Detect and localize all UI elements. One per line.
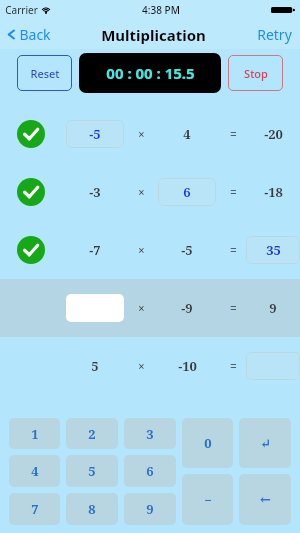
staticText: 9 bbox=[269, 299, 277, 317]
staticText: = bbox=[230, 358, 237, 374]
button[interactable]: Stop bbox=[228, 55, 283, 91]
button[interactable]: 35 bbox=[246, 236, 300, 264]
staticText: = bbox=[230, 184, 237, 200]
staticText: 00 : 00 : 15.5 bbox=[106, 63, 195, 83]
button[interactable]: -7 bbox=[0, 221, 300, 279]
button[interactable] bbox=[246, 352, 300, 380]
button[interactable]: Reset bbox=[17, 55, 72, 91]
staticText: -3 bbox=[89, 183, 101, 201]
staticText: 1 bbox=[31, 425, 39, 443]
button[interactable]: 5 bbox=[66, 455, 118, 487]
staticText: -5 bbox=[181, 241, 193, 259]
staticText: 6 bbox=[146, 462, 154, 480]
button[interactable]: 0 bbox=[182, 418, 233, 468]
staticText: × bbox=[138, 358, 145, 374]
button[interactable]: Retry bbox=[257, 20, 292, 49]
staticText: 35 bbox=[266, 241, 281, 259]
staticText: -5 bbox=[89, 125, 101, 143]
staticText: = bbox=[230, 242, 237, 258]
staticText: ← bbox=[260, 492, 271, 507]
staticText: 3 bbox=[146, 425, 154, 443]
staticText: Stop bbox=[244, 66, 268, 81]
staticText: -9 bbox=[181, 299, 193, 317]
staticText: -7 bbox=[89, 241, 101, 259]
staticText: 8 bbox=[88, 500, 96, 518]
button[interactable]: 7 bbox=[9, 493, 60, 525]
button[interactable]: 4 bbox=[9, 455, 60, 487]
button[interactable]: 3 bbox=[124, 418, 176, 449]
button[interactable]: 8 bbox=[66, 493, 118, 525]
staticText: Retry bbox=[257, 25, 292, 44]
staticText: 6 bbox=[183, 183, 191, 201]
staticText: × bbox=[138, 242, 145, 258]
staticText: 4 bbox=[31, 462, 39, 480]
button[interactable]: Back bbox=[6, 20, 51, 49]
staticText: = bbox=[230, 300, 237, 316]
staticText: × bbox=[138, 300, 145, 316]
staticText: 9 bbox=[146, 500, 154, 518]
staticText: -10 bbox=[178, 357, 197, 375]
staticText: 7 bbox=[31, 500, 39, 518]
button[interactable]: -3 bbox=[0, 163, 300, 221]
button[interactable]: -5 bbox=[0, 105, 300, 163]
button[interactable] bbox=[66, 294, 124, 322]
staticText: × bbox=[138, 126, 145, 142]
staticText: 0 bbox=[204, 434, 212, 452]
button[interactable]: Enter bbox=[239, 418, 291, 468]
button[interactable]: 1 bbox=[9, 418, 60, 449]
staticText: ↵ bbox=[260, 436, 271, 451]
staticText: Reset bbox=[30, 66, 60, 81]
staticText: 4:38 PM bbox=[142, 3, 180, 17]
staticText: 2 bbox=[88, 425, 96, 443]
button[interactable]: -5 bbox=[66, 120, 124, 148]
staticText: -18 bbox=[264, 183, 283, 201]
button[interactable]: Backspace bbox=[239, 474, 291, 525]
button[interactable]: 5 bbox=[0, 337, 300, 395]
staticText: 5 bbox=[88, 462, 96, 480]
staticText: 4 bbox=[183, 125, 191, 143]
button[interactable]: × bbox=[0, 279, 300, 337]
staticText: − bbox=[204, 491, 212, 509]
staticText: Carrier bbox=[5, 3, 38, 17]
staticText: = bbox=[230, 126, 237, 142]
button[interactable]: 9 bbox=[124, 493, 176, 525]
button[interactable]: Minus bbox=[182, 474, 233, 525]
button[interactable]: 6 bbox=[158, 178, 216, 206]
button[interactable]: 6 bbox=[124, 455, 176, 487]
staticText: 5 bbox=[91, 357, 99, 375]
staticText: Back bbox=[19, 25, 51, 44]
button[interactable]: 2 bbox=[66, 418, 118, 449]
staticText: × bbox=[138, 184, 145, 200]
staticText: Multiplication bbox=[101, 25, 206, 45]
staticText: -20 bbox=[264, 125, 283, 143]
